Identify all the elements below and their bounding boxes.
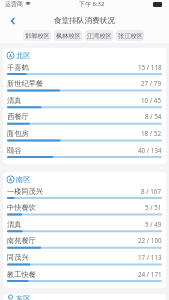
button[interactable]: 邯郸校区 [23,30,51,41]
staticText: 8 / 54 [145,112,162,121]
staticText: 运营商 [5,0,23,8]
button[interactable]: 江湾校区 [85,30,113,41]
button[interactable]: 返回 [6,14,19,27]
button[interactable]: 西餐厅 [3,111,166,128]
staticText: 5 / 49 [145,220,162,229]
staticText: 中快餐饮 [7,203,36,212]
button[interactable]: 新世纪早餐 [3,78,166,95]
staticText: 颐谷 [7,146,22,155]
staticText: 清真 [7,220,22,229]
staticText: 千喜鹤 [7,63,29,72]
button[interactable]: 教工快餐 [3,269,166,286]
button[interactable]: 同茂兴 [3,252,166,269]
staticText: 南区 [16,175,31,184]
staticText: 8 / 167 [141,187,162,196]
button[interactable]: 颐谷 [3,145,166,162]
staticText: 5 / 51 [145,203,162,212]
staticText: 张江校区 [118,32,143,40]
staticText: 10 / 45 [141,96,162,105]
staticText: 新世纪早餐 [7,79,43,88]
button[interactable]: 一楼同茂兴 [3,186,166,203]
staticText: 北区 [16,51,31,60]
staticText: 邯郸校区 [25,32,50,40]
staticText: 西餐厅 [7,112,29,121]
staticText: 15 / 118 [138,63,162,72]
staticText: 17 / 113 [138,253,162,262]
staticText: 18 / 52 [141,129,162,138]
staticText: 面包房 [7,129,29,138]
staticText: 食堂排队消费状况 [54,16,115,26]
staticText: 下午 6:32 [79,0,105,8]
staticText: 江湾校区 [87,32,112,40]
button[interactable]: 清真 [3,95,166,112]
button[interactable]: 清真 [3,219,166,236]
button[interactable]: 中快餐饮 [3,202,166,219]
staticText: 清真 [7,96,22,105]
button[interactable]: 张江校区 [116,30,144,41]
staticText: 22 / 100 [138,236,162,245]
button[interactable]: 面包房 [3,128,166,145]
staticText: 24 / 171 [138,270,162,279]
staticText: 东区 [16,294,31,300]
staticText: 南苑餐厅 [7,236,36,245]
button[interactable]: 南苑餐厅 [3,235,166,252]
staticText: 一楼同茂兴 [7,187,43,196]
button[interactable]: 枫林校区 [54,30,82,41]
staticText: 同茂兴 [7,253,29,262]
button[interactable]: 千喜鹤 [3,62,166,79]
staticText: 枫林校区 [56,32,81,40]
staticText: 27 / 79 [141,79,162,88]
staticText: 教工快餐 [7,270,36,279]
staticText: 40 / 134 [138,146,162,155]
